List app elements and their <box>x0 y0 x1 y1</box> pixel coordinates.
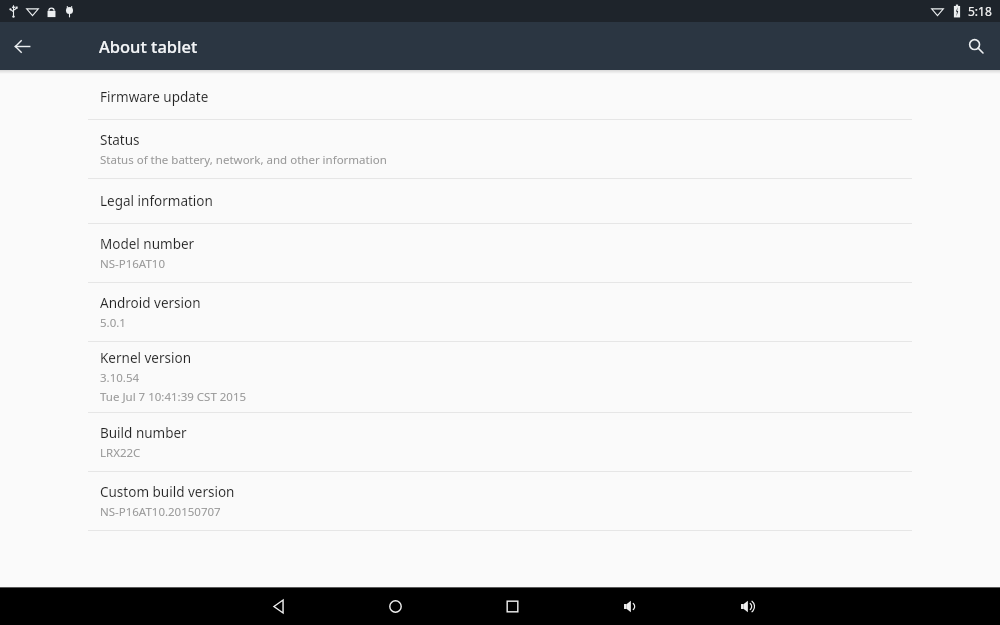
button[interactable]: Home <box>376 587 414 625</box>
button[interactable]: Search <box>959 29 993 63</box>
staticText: 5.0.1 <box>100 315 126 331</box>
staticText: Kernel version <box>100 349 192 367</box>
staticText: Model number <box>100 235 195 253</box>
button[interactable]: Build number <box>0 413 1000 471</box>
button[interactable]: Android version <box>0 283 1000 341</box>
button[interactable]: Model number <box>0 224 1000 282</box>
staticText: Status <box>100 131 140 149</box>
button[interactable]: Custom build version <box>0 472 1000 530</box>
staticText: NS-P16AT10.20150707 <box>100 504 221 520</box>
staticText: LRX22C <box>100 445 141 461</box>
staticText: Tue Jul 7 10:41:39 CST 2015 <box>100 389 247 405</box>
staticText: Android version <box>100 294 201 312</box>
staticText: Custom build version <box>100 483 235 501</box>
button[interactable]: Firmware update <box>0 75 1000 119</box>
staticText: Legal information <box>100 192 213 210</box>
button[interactable]: Back <box>259 587 297 625</box>
staticText: Firmware update <box>100 88 209 106</box>
staticText: 5:18 <box>968 3 992 19</box>
button[interactable]: Legal information <box>0 179 1000 223</box>
button[interactable]: Volume down <box>611 587 649 625</box>
staticText: Build number <box>100 424 187 442</box>
staticText: About tablet <box>99 35 198 57</box>
button[interactable]: Back <box>6 30 38 62</box>
button[interactable]: Volume up <box>728 587 766 625</box>
staticText: Status of the battery, network, and othe… <box>100 152 387 168</box>
button[interactable]: Status <box>0 120 1000 178</box>
button[interactable]: Recent apps <box>493 587 531 625</box>
staticText: 3.10.54 <box>100 370 140 386</box>
button[interactable]: Kernel version <box>0 342 1000 412</box>
staticText: NS-P16AT10 <box>100 256 165 272</box>
